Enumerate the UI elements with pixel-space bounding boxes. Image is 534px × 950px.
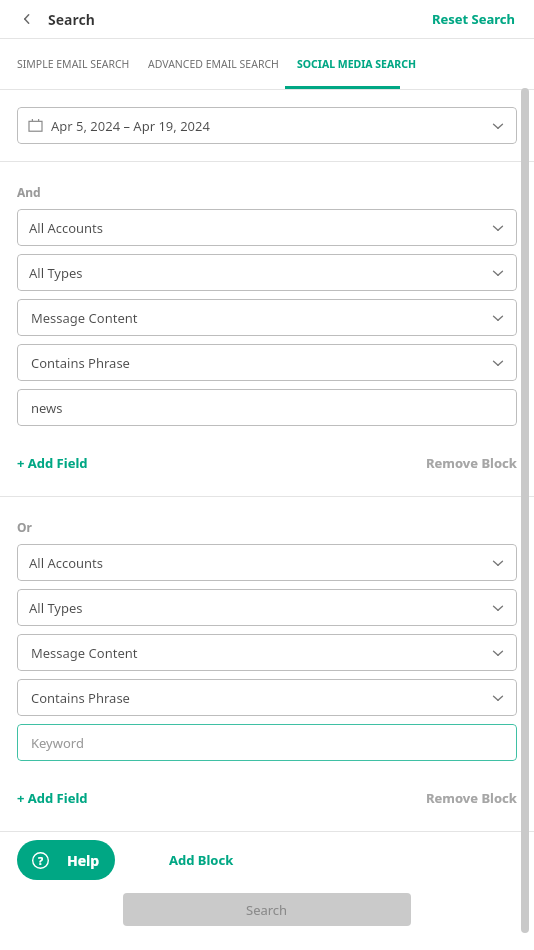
staticText: Contains Phrase (31, 354, 491, 372)
staticText: All Accounts (29, 219, 491, 237)
staticText: Keyword (31, 734, 84, 752)
staticText: ADVANCED EMAIL SEARCH (148, 57, 279, 71)
staticText: Add Block (169, 851, 234, 869)
staticText: Remove Block (426, 789, 517, 807)
staticText: SOCIAL MEDIA SEARCH (297, 57, 416, 71)
staticText: All Types (29, 599, 491, 617)
button[interactable]: Keyword (17, 724, 517, 761)
staticText: Message Content (31, 309, 491, 327)
staticText: Contains Phrase (31, 689, 491, 707)
staticText: Help (67, 851, 100, 870)
button[interactable]: Search (123, 893, 411, 926)
staticText: All Types (29, 264, 491, 282)
staticText: SIMPLE EMAIL SEARCH (17, 57, 130, 71)
staticText: Reset Search (432, 10, 516, 28)
button[interactable]: Remove Block (426, 450, 517, 476)
staticText: And (17, 184, 41, 200)
button[interactable]: Contains Phrase (17, 344, 517, 381)
staticText: Apr 5, 2024 – Apr 19, 2024 (51, 117, 491, 135)
staticText: + Add Field (17, 454, 88, 472)
staticText: news (31, 399, 63, 417)
button[interactable]: Add Block (163, 845, 240, 875)
button[interactable]: Contains Phrase (17, 679, 517, 716)
staticText: Search (246, 901, 288, 919)
staticText: Search (48, 10, 95, 29)
button[interactable]: Message Content (17, 299, 517, 336)
button[interactable]: + Add Field (17, 450, 88, 476)
button[interactable]: Back (14, 6, 40, 32)
staticText: ? (38, 853, 44, 868)
button[interactable]: All Accounts (17, 544, 517, 581)
button[interactable]: news (17, 389, 517, 426)
button[interactable]: Reset Search (428, 6, 520, 32)
button[interactable]: All Types (17, 254, 517, 291)
button[interactable]: ADVANCED EMAIL SEARCH (148, 39, 279, 88)
staticText: Message Content (31, 644, 491, 662)
staticText: Or (17, 519, 32, 535)
button[interactable]: Apr 5, 2024 – Apr 19, 2024 (17, 107, 517, 144)
staticText: All Accounts (29, 554, 491, 572)
button[interactable]: SIMPLE EMAIL SEARCH (17, 39, 130, 88)
button[interactable]: + Add Field (17, 785, 88, 811)
button[interactable]: Remove Block (426, 785, 517, 811)
button[interactable]: All Accounts (17, 209, 517, 246)
staticText: Remove Block (426, 454, 517, 472)
button[interactable]: ? (17, 840, 115, 880)
staticText: + Add Field (17, 789, 88, 807)
button[interactable]: SOCIAL MEDIA SEARCH (297, 39, 416, 88)
button[interactable]: All Types (17, 589, 517, 626)
button[interactable]: Message Content (17, 634, 517, 671)
